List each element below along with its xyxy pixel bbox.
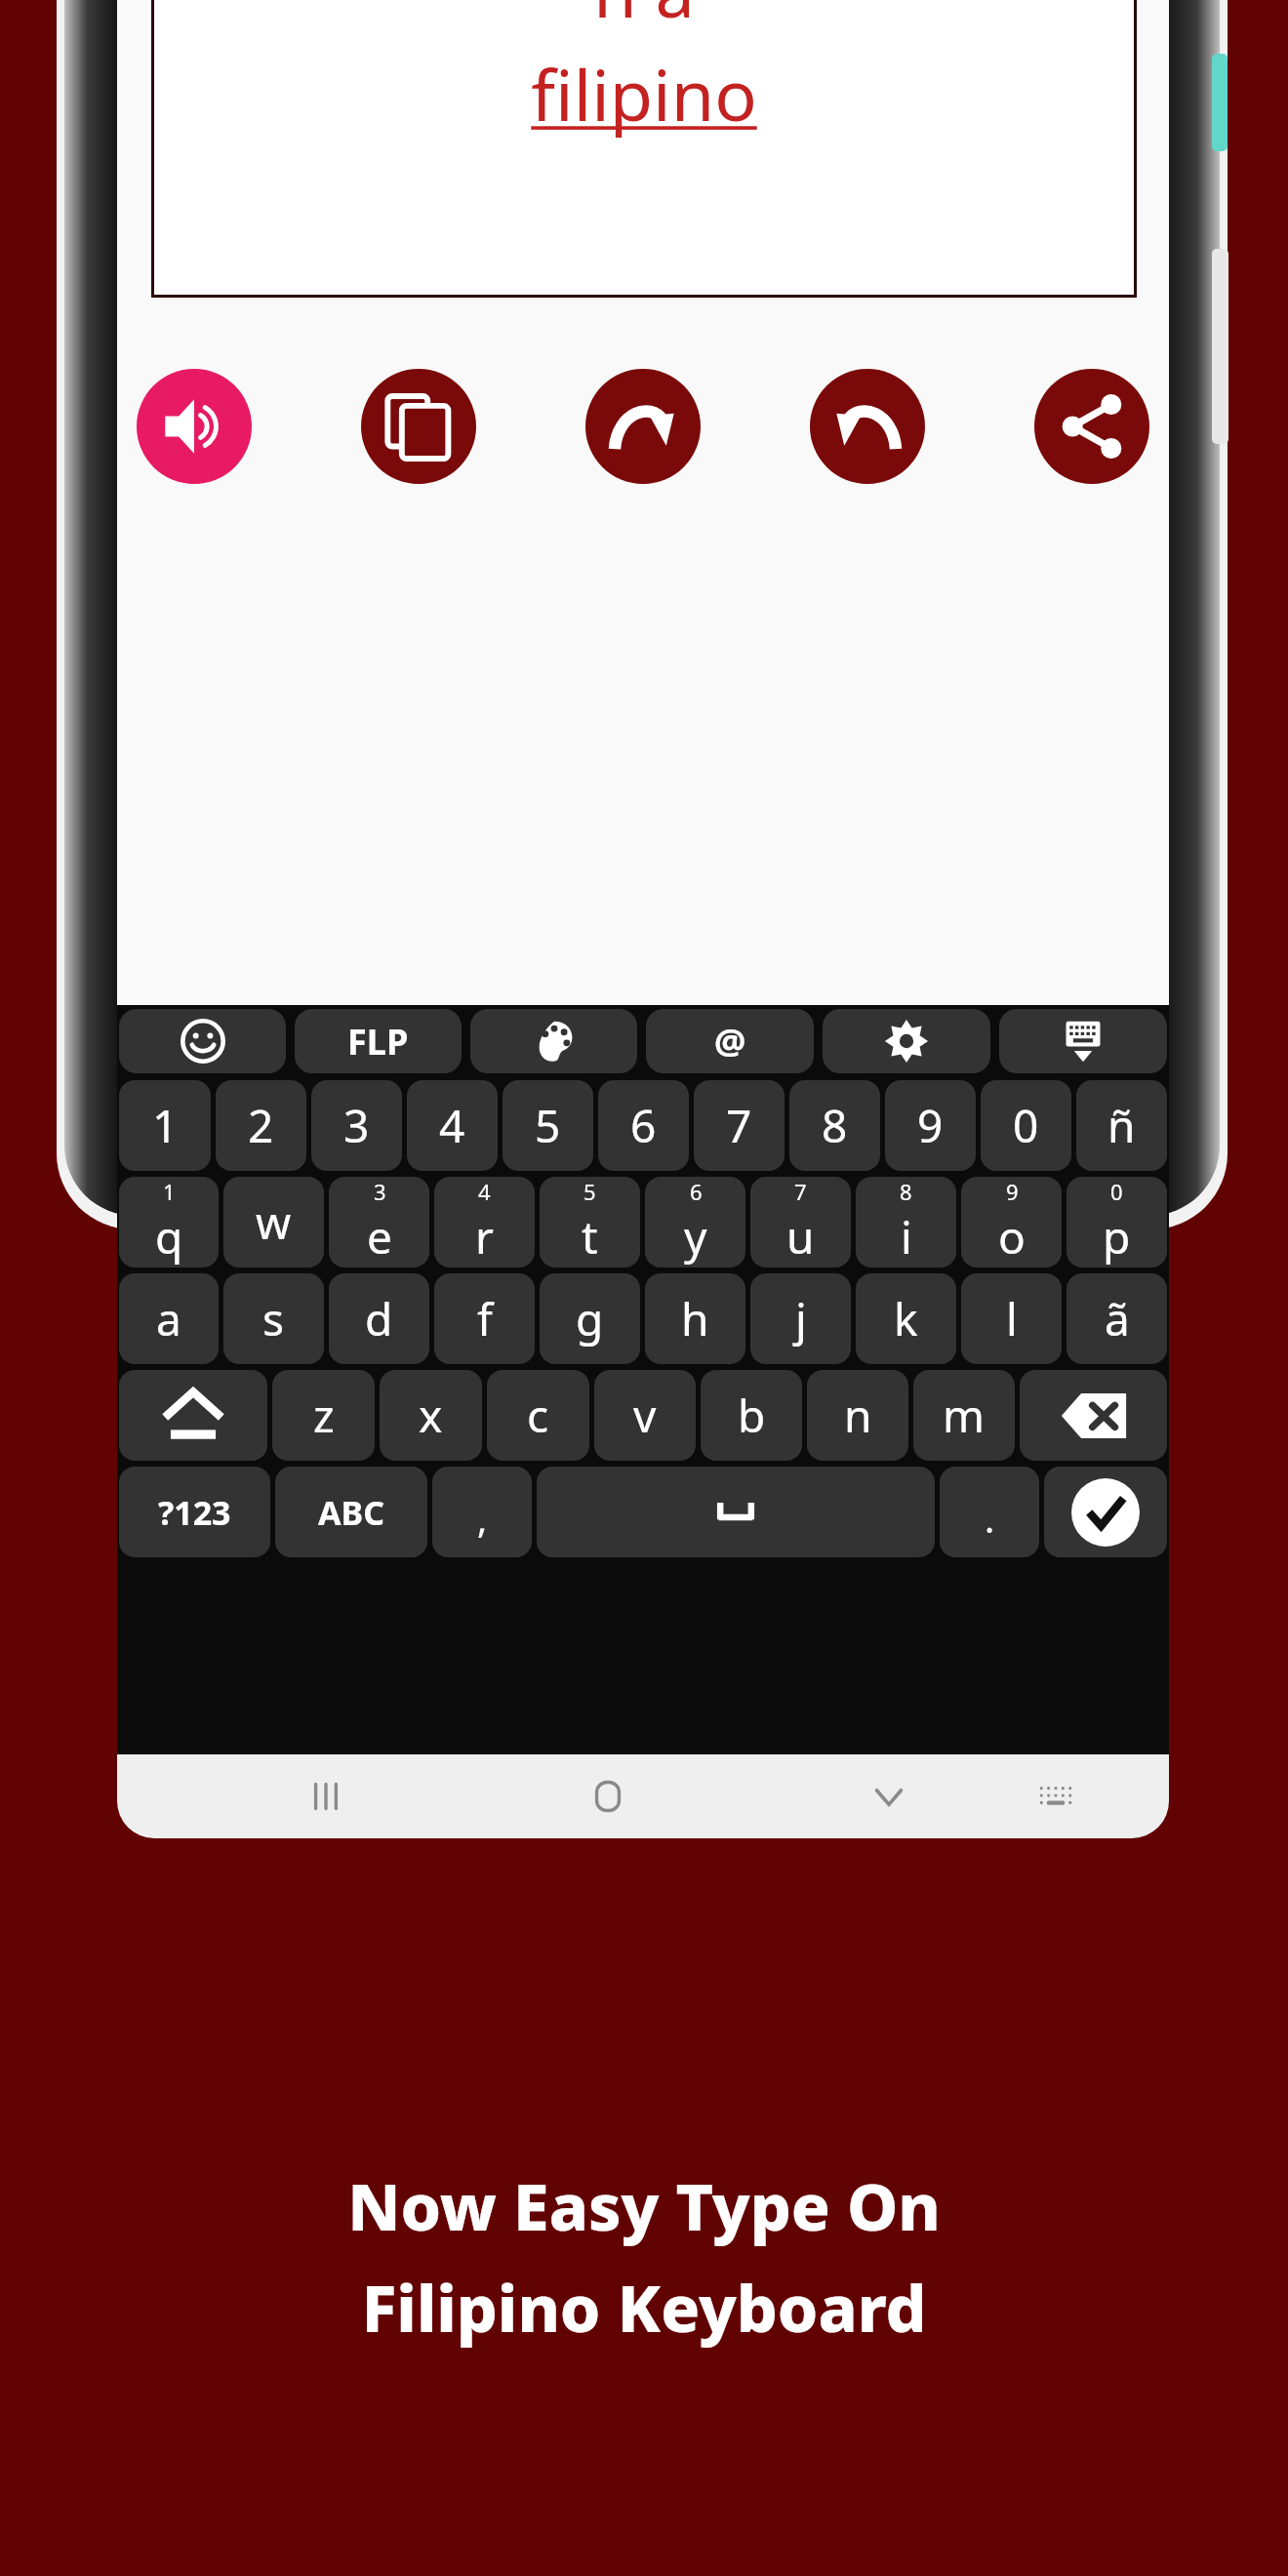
staticText: m: [943, 1385, 986, 1446]
staticText: h: [681, 1288, 709, 1349]
staticText: filipino: [531, 46, 757, 141]
button[interactable]: Shift: [119, 1370, 267, 1461]
button[interactable]: 9: [961, 1177, 1062, 1268]
button[interactable]: m: [913, 1370, 1015, 1461]
button[interactable]: Hide keyboard: [999, 1009, 1167, 1073]
staticText: u: [786, 1206, 815, 1268]
staticText: ñ ã: [593, 0, 695, 38]
button[interactable]: Space: [537, 1467, 935, 1557]
staticText: 8: [900, 1177, 912, 1206]
staticText: l: [1006, 1288, 1018, 1349]
staticText: 2: [248, 1095, 274, 1156]
button[interactable]: 8: [789, 1080, 880, 1171]
staticText: o: [998, 1206, 1026, 1268]
button[interactable]: w: [223, 1177, 324, 1268]
button[interactable]: 1: [119, 1177, 219, 1268]
staticText: 0: [1110, 1177, 1123, 1206]
staticText: t: [582, 1206, 598, 1268]
staticText: j: [795, 1288, 807, 1349]
staticText: 8: [822, 1095, 848, 1156]
staticText: g: [576, 1288, 604, 1349]
button[interactable]: l: [961, 1273, 1062, 1364]
button[interactable]: Recents: [259, 1754, 393, 1838]
staticText: 1: [152, 1095, 179, 1156]
button[interactable]: 2: [216, 1080, 306, 1171]
button[interactable]: n: [807, 1370, 908, 1461]
button[interactable]: ã: [1067, 1273, 1167, 1364]
button[interactable]: Back: [822, 1754, 955, 1838]
staticText: 3: [374, 1177, 386, 1206]
button[interactable]: 7: [750, 1177, 851, 1268]
button[interactable]: 1: [119, 1080, 211, 1171]
button[interactable]: z: [272, 1370, 375, 1461]
button[interactable]: FLP: [295, 1009, 462, 1073]
staticText: .: [985, 1493, 995, 1544]
button[interactable]: x: [380, 1370, 482, 1461]
button[interactable]: 0: [981, 1080, 1071, 1171]
staticText: Now Easy Type On: [347, 2161, 941, 2249]
staticText: 5: [584, 1177, 596, 1206]
staticText: 3: [343, 1095, 370, 1156]
button[interactable]: .: [940, 1467, 1039, 1557]
staticText: b: [738, 1385, 766, 1446]
staticText: 4: [439, 1095, 465, 1156]
staticText: 4: [478, 1177, 491, 1206]
button[interactable]: v: [594, 1370, 696, 1461]
button[interactable]: ,: [432, 1467, 532, 1557]
button[interactable]: Enter: [1044, 1467, 1167, 1557]
button[interactable]: 6: [645, 1177, 745, 1268]
button[interactable]: b: [701, 1370, 802, 1461]
button[interactable]: g: [540, 1273, 640, 1364]
button[interactable]: Theme: [470, 1009, 637, 1073]
button[interactable]: Switch keyboard: [988, 1754, 1122, 1838]
button[interactable]: Undo: [810, 369, 925, 484]
button[interactable]: c: [487, 1370, 589, 1461]
button[interactable]: 4: [407, 1080, 498, 1171]
staticText: p: [1103, 1206, 1131, 1268]
button[interactable]: Home: [541, 1754, 674, 1838]
button[interactable]: 5: [503, 1080, 593, 1171]
button[interactable]: d: [329, 1273, 429, 1364]
button[interactable]: ñ ã: [151, 0, 1137, 298]
staticText: 0: [1013, 1095, 1039, 1156]
staticText: 7: [726, 1095, 752, 1156]
button[interactable]: 9: [885, 1080, 976, 1171]
button[interactable]: 4: [434, 1177, 535, 1268]
button[interactable]: ñ: [1076, 1080, 1167, 1171]
button[interactable]: Backspace: [1020, 1370, 1167, 1461]
button[interactable]: h: [645, 1273, 745, 1364]
staticText: z: [313, 1385, 335, 1446]
button[interactable]: @: [646, 1009, 814, 1073]
button[interactable]: Speak: [137, 369, 252, 484]
button[interactable]: 0: [1067, 1177, 1167, 1268]
button[interactable]: j: [750, 1273, 851, 1364]
button[interactable]: 3: [311, 1080, 402, 1171]
staticText: ABC: [318, 1490, 384, 1535]
button[interactable]: 7: [694, 1080, 785, 1171]
staticText: a: [156, 1288, 181, 1349]
staticText: FLP: [347, 1018, 409, 1066]
button[interactable]: s: [223, 1273, 324, 1364]
button[interactable]: a: [119, 1273, 219, 1364]
button[interactable]: f: [434, 1273, 535, 1364]
button[interactable]: Copy: [361, 369, 476, 484]
staticText: f: [477, 1288, 493, 1349]
staticText: r: [475, 1206, 494, 1268]
button[interactable]: 5: [540, 1177, 640, 1268]
button[interactable]: Redo: [585, 369, 701, 484]
button[interactable]: Settings: [823, 1009, 990, 1073]
button[interactable]: Share: [1034, 369, 1149, 484]
staticText: x: [419, 1385, 443, 1446]
button[interactable]: 3: [329, 1177, 429, 1268]
button[interactable]: ?123: [119, 1467, 270, 1557]
staticText: 1: [163, 1177, 176, 1206]
staticText: i: [901, 1206, 912, 1268]
button[interactable]: 8: [856, 1177, 956, 1268]
button[interactable]: ABC: [275, 1467, 427, 1557]
staticText: s: [262, 1288, 285, 1349]
button[interactable]: k: [856, 1273, 956, 1364]
staticText: c: [527, 1385, 549, 1446]
button[interactable]: Emoji: [119, 1009, 286, 1073]
button[interactable]: 6: [598, 1080, 689, 1171]
staticText: ?123: [158, 1490, 231, 1535]
